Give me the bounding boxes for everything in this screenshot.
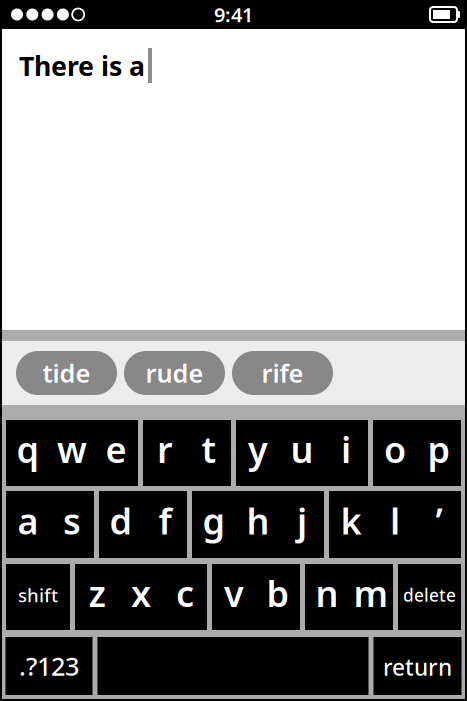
button[interactable]: k: [329, 491, 461, 558]
staticText: u: [290, 425, 313, 473]
button[interactable]: rude: [124, 351, 225, 395]
staticText: k: [340, 497, 361, 544]
staticText: tide: [42, 356, 90, 390]
button[interactable]: delete: [398, 564, 461, 630]
staticText: h: [246, 497, 269, 544]
staticText: r: [157, 425, 173, 473]
button[interactable]: g: [192, 491, 324, 558]
staticText: delete: [403, 583, 456, 606]
button[interactable]: r: [143, 420, 231, 486]
button[interactable]: a: [6, 491, 94, 558]
staticText: g: [202, 497, 225, 544]
button[interactable]: n: [305, 564, 393, 630]
button[interactable]: z: [75, 564, 207, 630]
staticText: x: [131, 569, 151, 617]
staticText: p: [427, 425, 450, 473]
staticText: o: [384, 425, 406, 473]
button[interactable]: tide: [16, 351, 117, 395]
button[interactable]: y: [236, 420, 368, 486]
staticText: j: [297, 497, 307, 544]
staticText: f: [158, 497, 171, 544]
staticText: s: [63, 497, 81, 544]
staticText: a: [17, 497, 38, 544]
staticText: t: [201, 425, 216, 473]
staticText: c: [176, 569, 194, 617]
staticText: rude: [145, 356, 203, 390]
staticText: return: [383, 652, 452, 682]
button[interactable]: v: [212, 564, 300, 630]
button[interactable]: d: [99, 491, 187, 558]
staticText: 9:41: [214, 1, 253, 28]
button[interactable]: rife: [232, 351, 333, 395]
staticText: d: [109, 497, 132, 544]
staticText: ’: [435, 497, 442, 544]
staticText: w: [57, 425, 87, 473]
staticText: rife: [261, 356, 303, 390]
staticText: y: [248, 425, 268, 473]
staticText: m: [353, 569, 388, 617]
staticText: n: [315, 569, 338, 617]
staticText: v: [224, 569, 244, 617]
staticText: shift: [18, 583, 58, 607]
button[interactable]: .?123: [5, 637, 92, 695]
button[interactable]: q: [6, 420, 138, 486]
staticText: q: [16, 425, 39, 473]
staticText: z: [88, 569, 105, 617]
staticText: i: [341, 425, 351, 473]
staticText: e: [105, 425, 126, 473]
staticText: .?123: [19, 649, 79, 683]
button[interactable]: o: [373, 420, 461, 486]
staticText: b: [266, 569, 289, 617]
button[interactable]: shift: [6, 564, 70, 630]
button[interactable]: return: [373, 637, 461, 695]
staticText: l: [390, 497, 400, 544]
staticText: There is a: [19, 48, 145, 83]
